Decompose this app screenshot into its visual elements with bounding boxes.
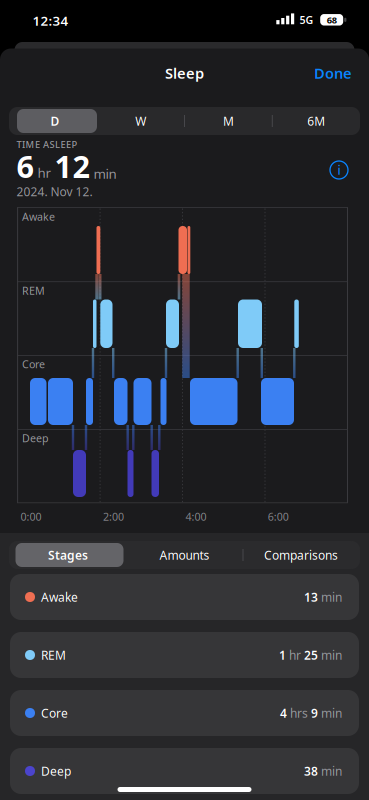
staticText: 25 [304,647,318,663]
staticText: 5G [299,13,313,27]
staticText: 12:34 [32,12,68,29]
staticText: M [223,113,234,129]
staticText: D [50,113,59,129]
staticText: Core [41,705,68,721]
staticText: min [321,647,342,663]
staticText: 12 [54,146,90,186]
staticText: min [321,705,342,721]
staticText: 0:00 [21,509,42,524]
staticText: 9 [311,705,318,721]
staticText: 6:00 [268,509,289,524]
staticText: Sleep [165,63,204,83]
staticText: min [93,165,116,182]
staticText: min [321,589,342,605]
staticText: Amounts [159,547,209,563]
staticText: Deep [41,763,71,779]
staticText: min [321,763,342,779]
button[interactable]: REM [10,632,359,678]
staticText: hr [37,164,51,181]
button[interactable]: W [98,107,184,135]
staticText: 68 [327,14,337,26]
staticText: Core [22,357,45,371]
staticText: 4:00 [185,509,206,524]
button[interactable]: Stages [10,541,125,569]
staticText: 2024. Nov 12. [16,183,92,199]
button[interactable]: Comparisons [243,541,358,569]
button[interactable]: Awake [10,574,359,620]
button[interactable]: Core [10,690,359,736]
staticText: TIME ASLEEP [16,138,77,151]
button[interactable]: D [12,107,98,135]
button[interactable]: 6M [273,107,359,135]
button[interactable]: Amounts [127,541,242,569]
button[interactable]: Deep [10,748,359,794]
staticText: 1 [279,647,286,663]
staticText: i [337,162,340,178]
staticText: hrs [290,705,308,721]
staticText: 2:00 [103,509,124,524]
staticText: Comparisons [264,547,338,563]
staticText: 38 [304,763,318,779]
staticText: REM [41,647,66,663]
staticText: Deep [22,431,49,445]
staticText: hr [289,647,301,663]
button[interactable]: i [326,157,352,183]
staticText: Stages [48,547,88,563]
staticText: Awake [22,209,55,224]
staticText: 13 [304,589,318,605]
staticText: Done [314,63,352,83]
staticText: REM [22,283,45,298]
staticText: 6M [307,113,325,129]
staticText: 6 [16,146,34,186]
button[interactable]: Done [303,58,363,88]
staticText: 4 [280,705,287,721]
staticText: W [135,113,146,129]
staticText: Awake [41,589,78,605]
button[interactable]: M [185,107,271,135]
